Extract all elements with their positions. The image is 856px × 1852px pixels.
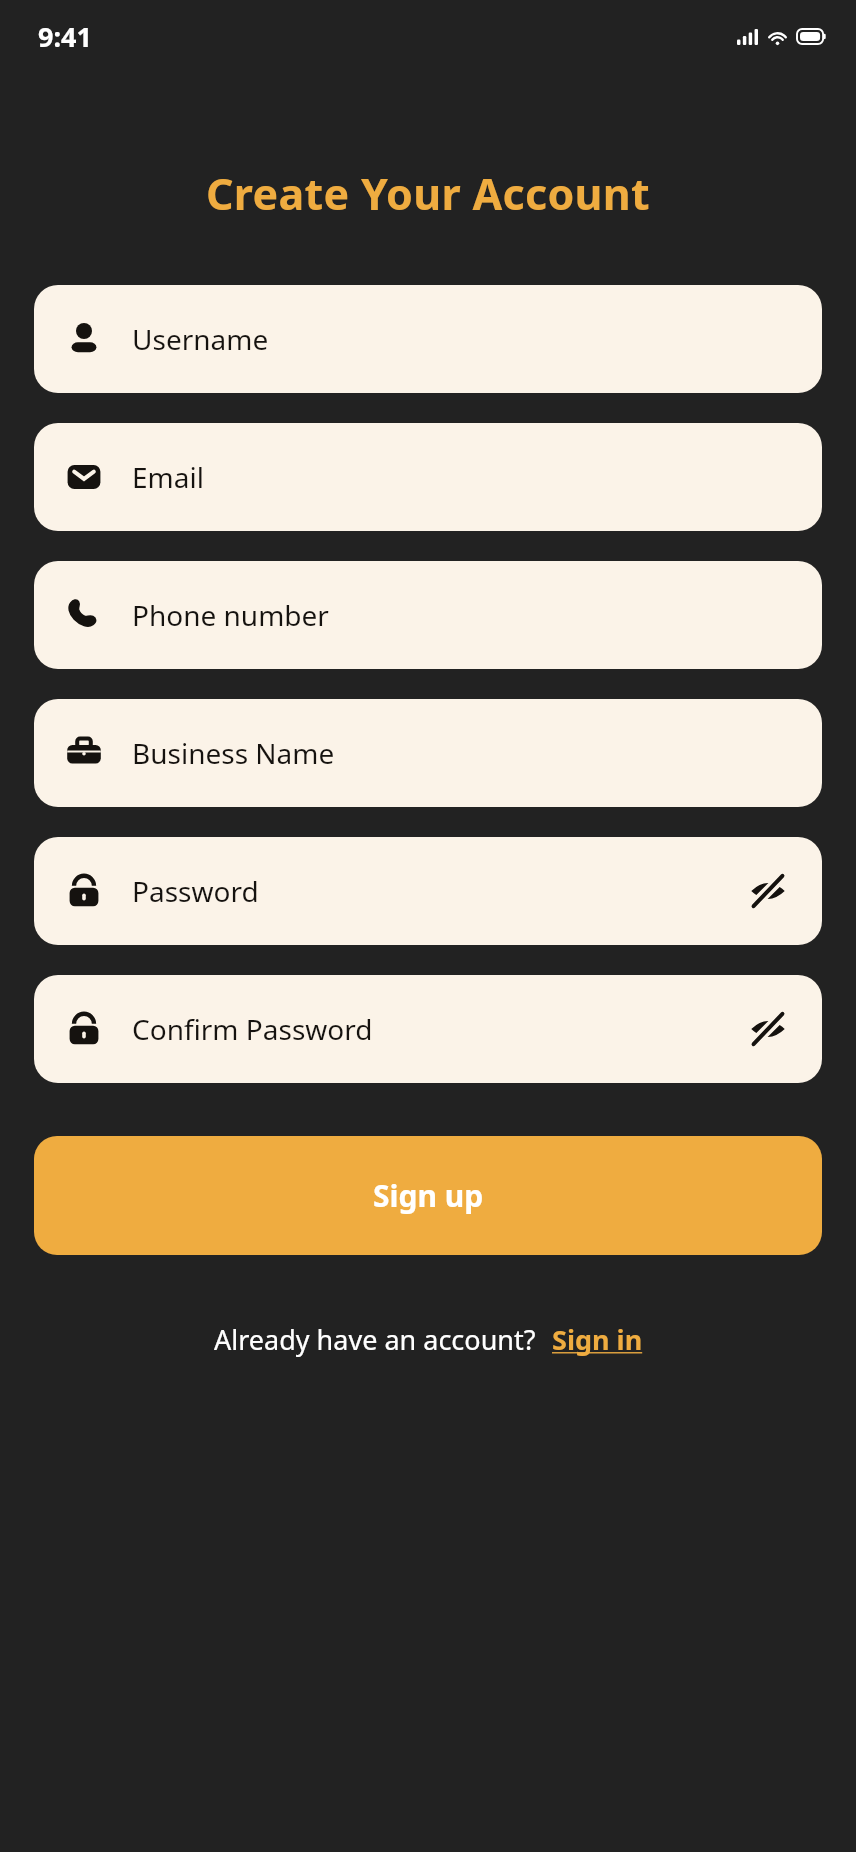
staticText: 9:41 bbox=[38, 18, 92, 55]
button[interactable]: Sign in bbox=[552, 1321, 643, 1358]
button[interactable]: Show password bbox=[744, 1005, 792, 1053]
staticText: Already have an account? bbox=[214, 1321, 536, 1358]
button[interactable]: Sign up bbox=[34, 1136, 822, 1255]
button[interactable]: Business Name bbox=[34, 699, 822, 807]
staticText: Username bbox=[132, 320, 792, 358]
button[interactable]: Show password bbox=[744, 867, 792, 915]
staticText: Email bbox=[132, 458, 792, 496]
button[interactable]: Username bbox=[34, 285, 822, 393]
staticText: Sign up bbox=[373, 1175, 484, 1216]
staticText: Password bbox=[132, 872, 744, 910]
staticText: Confirm Password bbox=[132, 1010, 744, 1048]
button[interactable]: Confirm Password bbox=[34, 975, 822, 1083]
staticText: Phone number bbox=[132, 596, 792, 634]
button[interactable]: Phone number bbox=[34, 561, 822, 669]
staticText: Business Name bbox=[132, 734, 792, 772]
staticText: Sign in bbox=[552, 1321, 643, 1358]
button[interactable]: Email bbox=[34, 423, 822, 531]
staticText: Create Your Account bbox=[0, 164, 856, 223]
button[interactable]: Password bbox=[34, 837, 822, 945]
